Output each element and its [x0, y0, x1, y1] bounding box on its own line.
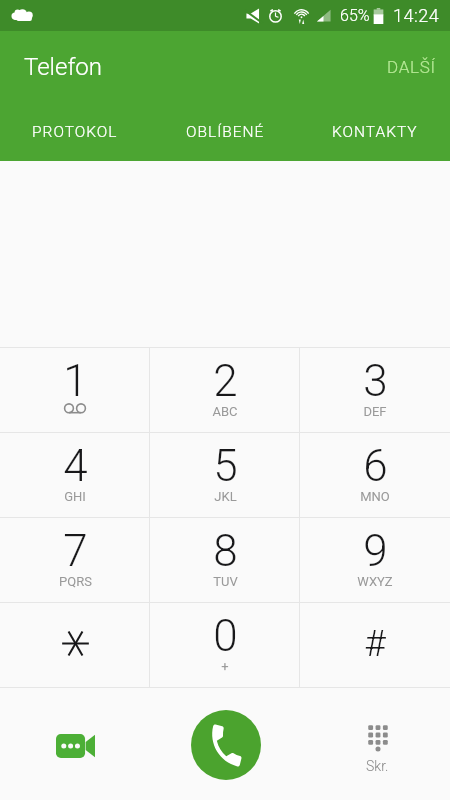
staticText: TUV	[213, 574, 238, 589]
staticText: 14:24	[393, 5, 440, 26]
button[interactable]: PROTOKOL	[0, 103, 150, 161]
button[interactable]: KONTAKTY	[300, 103, 450, 161]
staticText: MNO	[360, 489, 390, 504]
staticText: 8	[213, 525, 238, 577]
button[interactable]: #	[300, 603, 450, 687]
staticText: 1	[63, 355, 88, 407]
staticText: WXYZ	[357, 574, 393, 589]
staticText: PROTOKOL	[32, 123, 118, 141]
button[interactable]: 1	[0, 348, 150, 432]
staticText: 4	[63, 440, 88, 492]
button[interactable]: 2	[150, 348, 300, 432]
staticText: #	[364, 622, 386, 665]
button[interactable]: Call	[191, 710, 261, 780]
staticText: Telefon	[24, 53, 102, 81]
button[interactable]: 9	[300, 518, 450, 602]
button[interactable]	[0, 603, 150, 687]
button[interactable]: OBLÍBENÉ	[150, 103, 300, 161]
staticText: 6	[363, 440, 388, 492]
staticText: DEF	[363, 404, 387, 419]
staticText: 0	[213, 610, 238, 662]
button[interactable]: 3	[300, 348, 450, 432]
staticText: GHI	[64, 489, 86, 504]
button[interactable]: 8	[150, 518, 300, 602]
button[interactable]: 0	[150, 603, 300, 687]
button[interactable]: 6	[300, 433, 450, 517]
staticText: 65%	[340, 6, 370, 25]
staticText: 2	[213, 355, 238, 407]
button[interactable]: 7	[0, 518, 150, 602]
staticText: Skr.	[366, 758, 389, 774]
staticText: KONTAKTY	[332, 123, 418, 141]
staticText: JKL	[214, 489, 237, 504]
staticText: 7	[63, 525, 88, 577]
staticText: DALŠÍ	[387, 57, 436, 77]
button[interactable]: 4	[0, 433, 150, 517]
button[interactable]: DALŠÍ	[371, 43, 450, 91]
staticText: 5	[213, 440, 238, 492]
button[interactable]: 5	[150, 433, 300, 517]
staticText: 3	[363, 355, 388, 407]
staticText: OBLÍBENÉ	[186, 123, 265, 141]
button[interactable]: Hide keypad	[358, 716, 397, 782]
staticText: PQRS	[59, 574, 92, 589]
staticText: 9	[363, 525, 388, 577]
button[interactable]: Video call	[43, 714, 107, 778]
staticText: +	[221, 659, 229, 674]
staticText: ABC	[212, 404, 238, 419]
